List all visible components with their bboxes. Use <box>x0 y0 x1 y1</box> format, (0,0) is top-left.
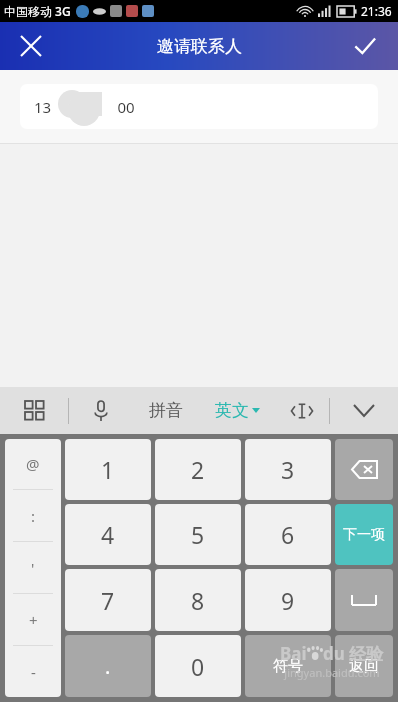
button[interactable]: 2 <box>155 439 241 500</box>
button[interactable]: Move cursor <box>275 387 329 434</box>
button[interactable]: + <box>5 594 61 645</box>
staticText: 下一项 <box>343 526 385 544</box>
staticText: du 经验 <box>323 642 384 665</box>
button[interactable]: 1 <box>65 439 151 500</box>
staticText: jingyan.baidu.com <box>284 665 380 680</box>
button[interactable]: 7 <box>65 569 151 631</box>
staticText: 2 <box>191 454 205 485</box>
staticText: 7 <box>101 585 115 616</box>
staticText: 13 00 <box>34 97 135 117</box>
button[interactable]: 下一项 <box>335 504 393 565</box>
button[interactable]: 5 <box>155 504 241 565</box>
button[interactable]: 英文 <box>199 387 275 434</box>
button[interactable]: ' <box>5 542 61 593</box>
staticText: 邀请联系人 <box>157 36 242 57</box>
staticText: 返回 <box>349 657 379 676</box>
button[interactable]: : <box>5 490 61 541</box>
staticText: 拼音 <box>149 400 183 421</box>
staticText: . <box>105 653 111 680</box>
button[interactable]: 拼音 <box>133 387 199 434</box>
button[interactable]: 符号 <box>245 635 331 697</box>
button[interactable]: Close <box>8 23 54 69</box>
button[interactable]: 3 <box>245 439 331 500</box>
button[interactable]: . <box>65 635 151 697</box>
staticText: 8 <box>191 585 205 616</box>
button[interactable]: @ <box>5 439 61 489</box>
staticText: Bai <box>280 642 307 665</box>
staticText: ' <box>31 558 35 578</box>
button[interactable]: Hide keyboard <box>330 387 398 434</box>
button[interactable]: 9 <box>245 569 331 631</box>
button[interactable]: Keyboard layouts <box>0 387 68 434</box>
staticText: @ <box>26 454 40 474</box>
staticText: 1 <box>101 454 115 485</box>
button[interactable]: 返回 <box>335 635 393 697</box>
staticText: 0 <box>191 651 205 682</box>
button[interactable]: Confirm <box>342 23 388 69</box>
staticText: - <box>31 662 36 682</box>
button[interactable]: 13 00 <box>20 84 378 129</box>
button[interactable]: 4 <box>65 504 151 565</box>
button[interactable]: Voice input <box>69 387 133 434</box>
staticText: 6 <box>281 519 295 550</box>
button[interactable]: 0 <box>155 635 241 697</box>
button[interactable]: Space <box>335 569 393 631</box>
staticText: 21:36 <box>361 3 392 19</box>
staticText: 4 <box>101 519 115 550</box>
staticText: 中国移动 3G <box>4 3 71 19</box>
button[interactable]: Backspace <box>335 439 393 500</box>
staticText: 9 <box>281 585 295 616</box>
staticText: 英文 <box>215 400 249 421</box>
staticText: : <box>31 506 36 526</box>
staticText: 符号 <box>273 657 303 676</box>
staticText: 3 <box>281 454 295 485</box>
staticText: + <box>29 610 38 630</box>
button[interactable]: - <box>5 646 61 697</box>
button[interactable]: 6 <box>245 504 331 565</box>
button[interactable]: 8 <box>155 569 241 631</box>
staticText: 5 <box>191 519 205 550</box>
